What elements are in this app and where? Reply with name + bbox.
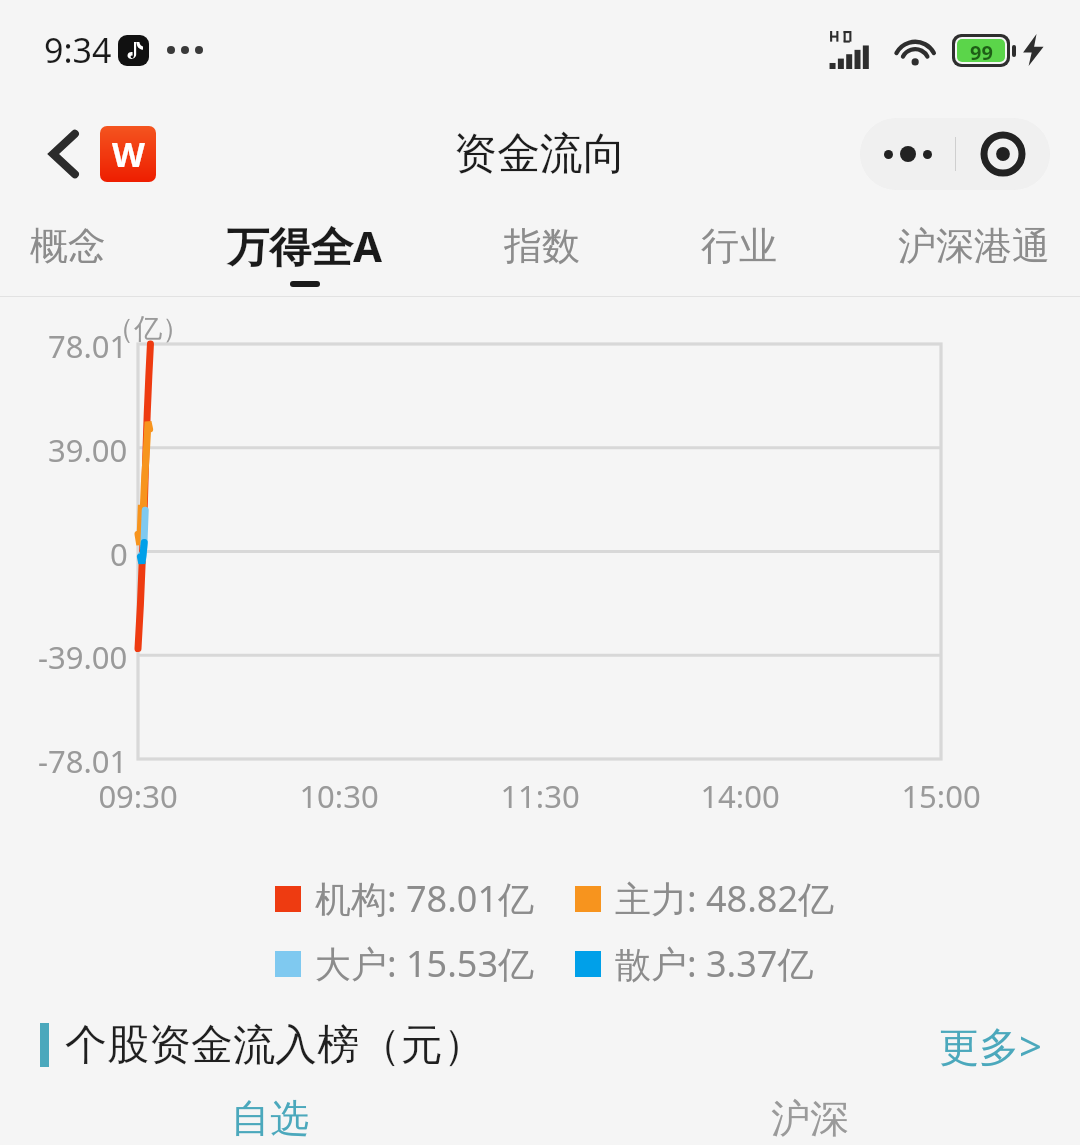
staticText: 更多> [939,1018,1042,1073]
staticText: 资金流向 [454,127,626,181]
staticText: 39.00 [48,429,128,467]
staticText: 78.01 [48,325,128,363]
button[interactable]: 大户: 15.53亿 [275,939,535,988]
staticText: 15:00 [901,775,981,817]
staticText: 万得全A [227,217,383,274]
staticText: 概念 [30,222,106,270]
button[interactable]: 万得全A [227,217,383,287]
staticText: -39.00 [38,636,128,674]
button[interactable]: 散户: 3.37亿 [575,939,814,988]
button[interactable]: 行业 [701,222,777,283]
staticText: 0 [110,533,128,571]
button[interactable]: 自选 [0,1094,540,1145]
staticText: 11:30 [500,775,580,817]
staticText: 个股资金流入榜（元） [65,1019,485,1072]
staticText: 自选 [231,1094,309,1143]
staticText: 沪深港通 [898,222,1050,270]
staticText: （亿） [106,311,190,346]
staticText: W [112,131,145,177]
staticText: 大户: 15.53亿 [315,939,535,988]
button[interactable]: Wind app [100,126,156,182]
staticText: 主力: 48.82亿 [615,874,835,923]
staticText: 9:34 [44,27,112,73]
staticText: 09:30 [98,775,178,817]
staticText: 指数 [504,222,580,270]
button[interactable]: 机构: 78.01亿 [275,874,535,923]
staticText: -78.01 [38,740,128,778]
button[interactable]: Close [956,118,1050,190]
staticText: 沪深 [771,1094,849,1143]
button[interactable]: 沪深港通 [898,222,1050,283]
staticText: 99 [970,39,993,62]
button[interactable]: 指数 [504,222,580,283]
button[interactable]: 主力: 48.82亿 [575,874,835,923]
button[interactable]: 概念 [30,222,106,283]
button[interactable]: Back [34,124,94,184]
button[interactable]: More options [860,118,955,190]
staticText: 散户: 3.37亿 [615,939,814,988]
staticText: 14:00 [700,775,780,817]
staticText: 10:30 [299,775,379,817]
button[interactable]: 沪深 [540,1094,1080,1145]
staticText: 机构: 78.01亿 [315,874,535,923]
staticText: 行业 [701,222,777,270]
button[interactable]: 更多> [939,1018,1042,1073]
